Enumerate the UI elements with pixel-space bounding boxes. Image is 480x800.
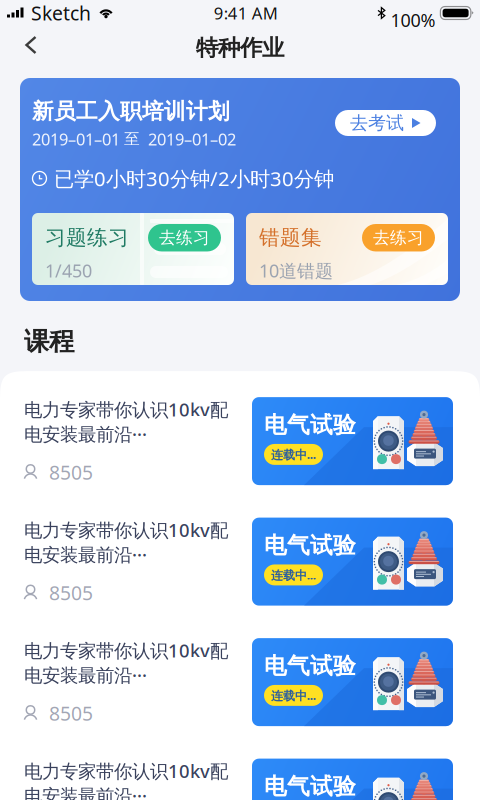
- staticText: 电气试验: [264, 532, 356, 559]
- staticText: 错题集: [259, 225, 322, 250]
- staticText: 电力专家带你认识10kv配 电安装最前沿···: [24, 518, 228, 566]
- staticText: 习题练习: [45, 225, 129, 250]
- staticText: 8505: [49, 459, 93, 485]
- staticText: 特种作业: [196, 34, 284, 62]
- staticText: 连载中...: [271, 567, 316, 583]
- button[interactable]: Back: [9, 25, 53, 65]
- staticText: 100%: [390, 8, 435, 32]
- staticText: 新员工入职培训计划: [32, 98, 230, 124]
- staticText: 2019–01–02: [140, 128, 236, 150]
- staticText: 电力专家带你认识10kv配 电安装最前沿···: [24, 638, 228, 687]
- staticText: 10道错题: [259, 258, 333, 282]
- staticText: 电力专家带你认识10kv配 电安装最前沿···: [24, 759, 228, 800]
- button[interactable]: 电力专家带你认识10kv配 电安装最前沿···: [0, 733, 480, 800]
- staticText: 电力专家带你认识10kv配 电安装最前沿···: [24, 397, 228, 446]
- staticText: 课程: [24, 326, 74, 357]
- button[interactable]: 错题集: [246, 213, 448, 285]
- staticText: 2019–01–01: [32, 128, 124, 150]
- staticText: 去考试: [350, 112, 404, 134]
- staticText: 8505: [49, 700, 93, 726]
- button[interactable]: 电力专家带你认识10kv配 电安装最前沿···: [0, 492, 480, 612]
- staticText: 去练习: [159, 227, 210, 248]
- staticText: 已学0小时30分钟/2小时30分钟: [54, 165, 334, 192]
- staticText: 电气试验: [264, 773, 356, 800]
- staticText: 连载中...: [271, 687, 316, 703]
- button[interactable]: 电力专家带你认识10kv配 电安装最前沿···: [0, 371, 480, 492]
- staticText: 1/450: [45, 258, 92, 282]
- staticText: 电气试验: [264, 652, 356, 680]
- staticText: 8505: [49, 580, 93, 606]
- staticText: Sketch: [31, 0, 91, 26]
- staticText: 至: [124, 129, 140, 149]
- staticText: 电气试验: [264, 411, 356, 439]
- staticText: 9:41 AM: [214, 2, 278, 24]
- button[interactable]: 去考试: [335, 110, 436, 136]
- button[interactable]: 习题练习: [32, 213, 234, 285]
- staticText: 连载中...: [271, 446, 316, 462]
- button[interactable]: 电力专家带你认识10kv配 电安装最前沿···: [0, 612, 480, 733]
- staticText: 去练习: [373, 227, 424, 248]
